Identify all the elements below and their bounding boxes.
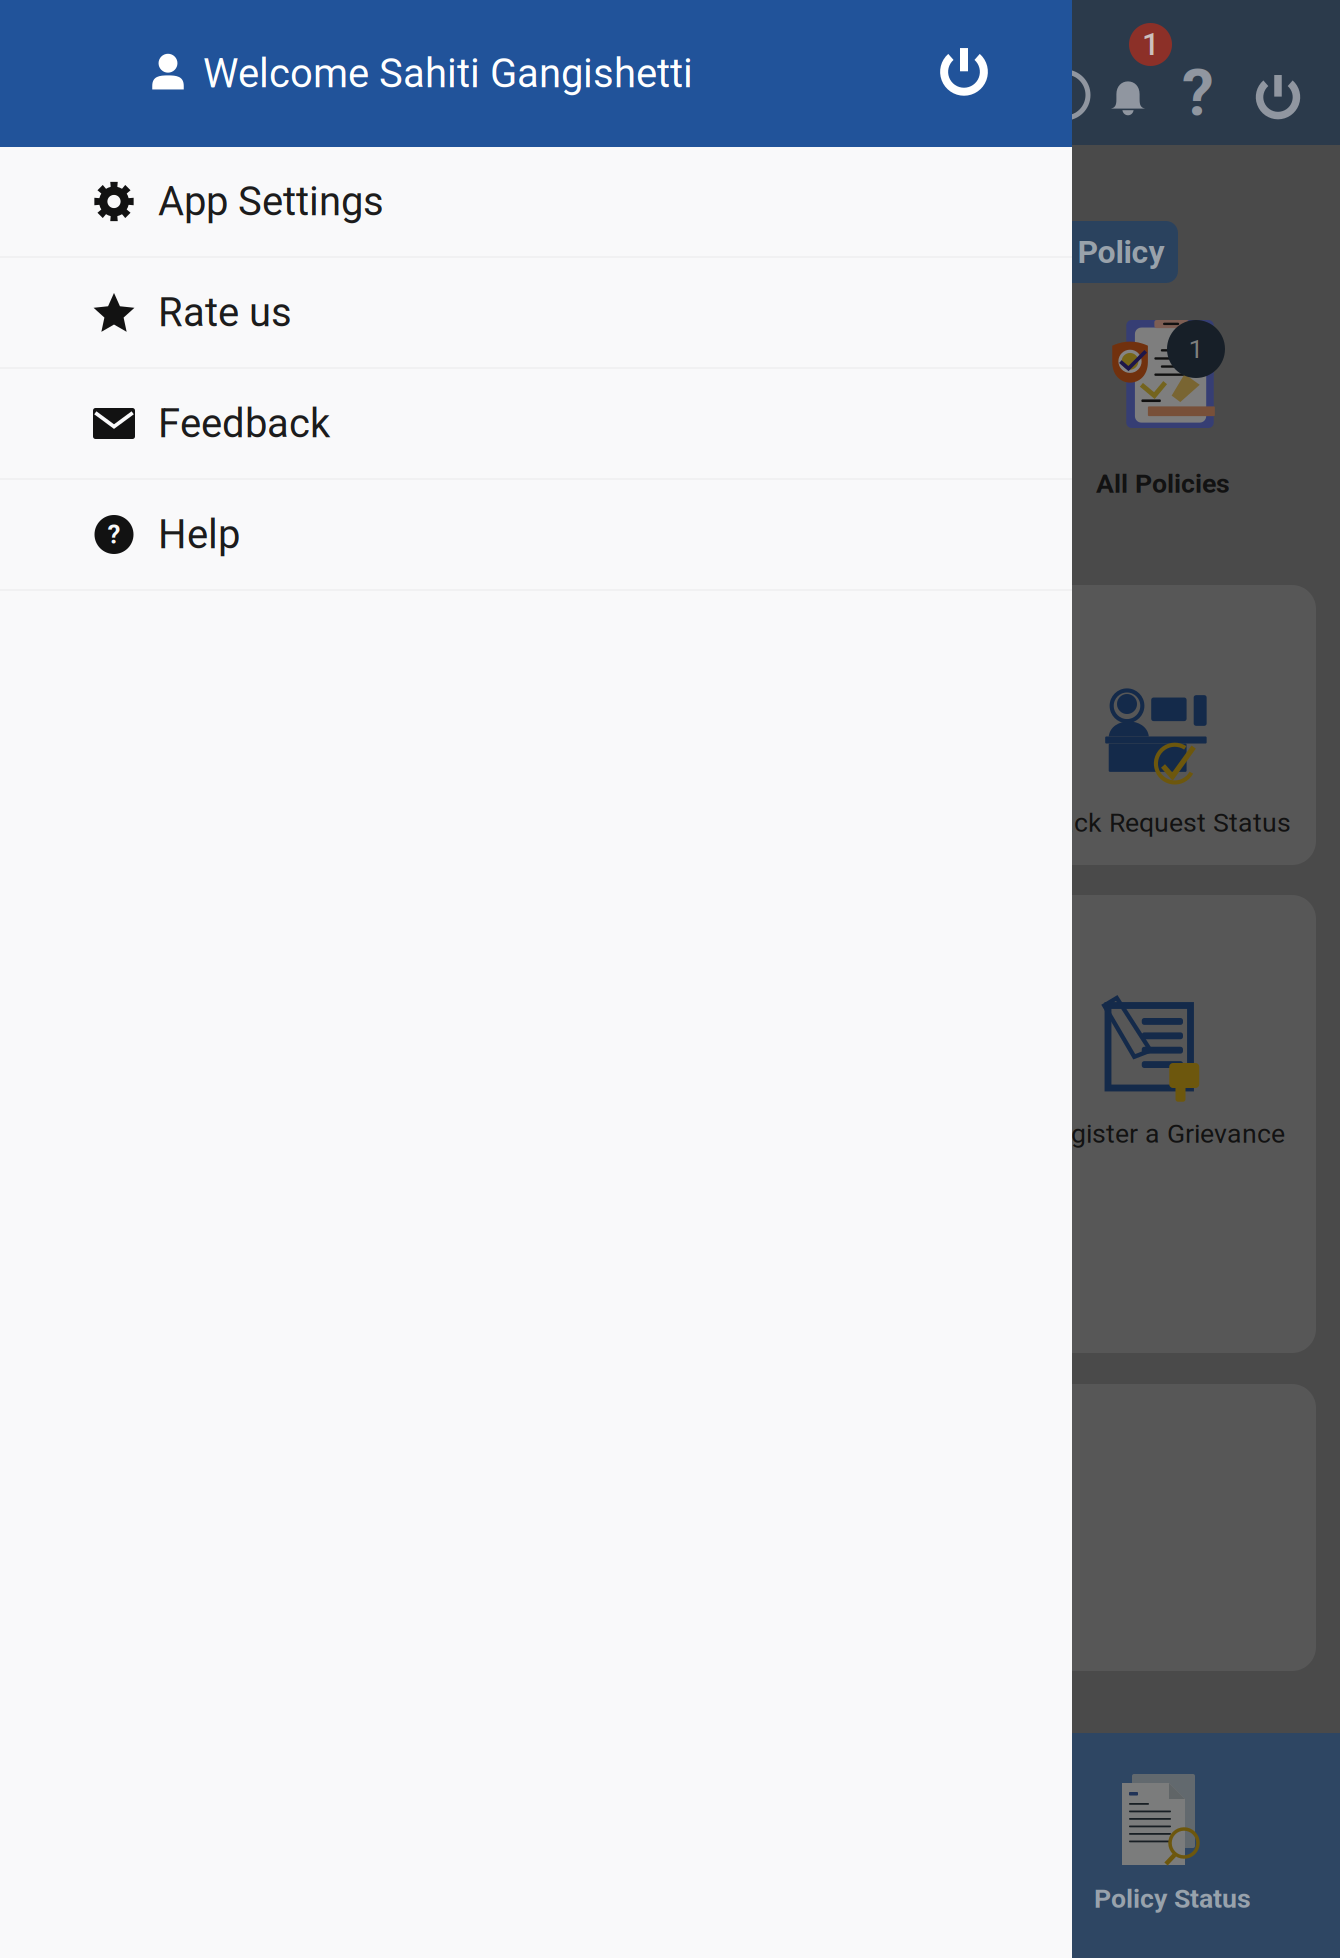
button[interactable]: Rate us — [0, 258, 1072, 367]
staticText: App Settings — [158, 178, 384, 225]
staticText: Welcome Sahiti Gangishetti — [203, 50, 693, 97]
staticText: Track Request Status — [1035, 807, 1291, 838]
staticText: Help — [158, 511, 240, 558]
staticText: Policy Status — [1094, 1883, 1251, 1914]
button[interactable]: App Settings — [0, 147, 1072, 256]
staticText: Feedback — [158, 400, 330, 447]
staticText: 1 — [1188, 333, 1203, 365]
staticText: My Policy — [1025, 233, 1164, 271]
staticText: ? — [1182, 55, 1214, 130]
staticText: Register a Grievance — [1041, 1118, 1285, 1149]
staticText: 1 — [1142, 26, 1159, 62]
button[interactable]: ? — [0, 480, 1072, 589]
staticText: Rate us — [158, 289, 292, 336]
button[interactable]: Welcome Sahiti Gangishetti — [0, 0, 1072, 147]
staticText: All Policies — [1096, 468, 1230, 499]
staticText: ? — [107, 519, 120, 550]
button[interactable]: Feedback — [0, 369, 1072, 478]
